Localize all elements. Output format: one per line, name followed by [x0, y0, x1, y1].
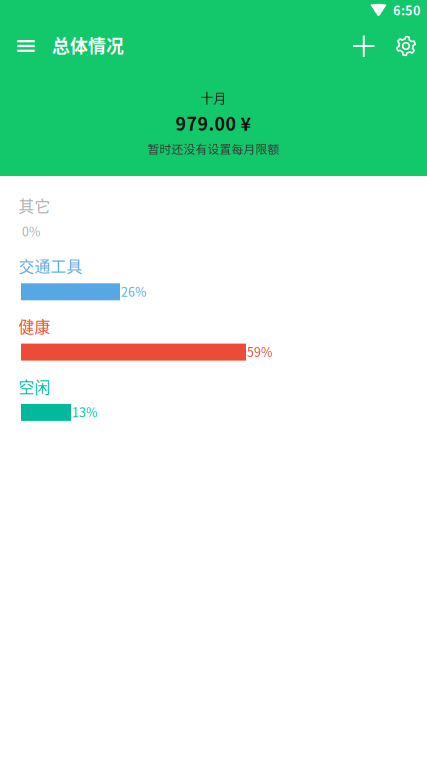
button[interactable]: 空闲: [0, 375, 427, 435]
staticText: 暂时还没有设置每月限额: [147, 140, 279, 157]
button[interactable]: 健康: [0, 315, 427, 375]
button[interactable]: Settings: [385, 22, 427, 70]
staticText: 0%: [22, 222, 40, 240]
staticText: 健康: [18, 315, 50, 337]
button[interactable]: Add transaction: [342, 22, 385, 70]
staticText: 59%: [247, 343, 272, 361]
staticText: 13%: [72, 403, 97, 421]
staticText: 979.00 ¥: [175, 110, 251, 136]
staticText: 总体情况: [52, 32, 124, 58]
staticText: 其它: [18, 194, 50, 217]
button[interactable]: 暂时还没有设置每月限额: [0, 140, 427, 157]
button[interactable]: 交通工具: [0, 254, 427, 315]
staticText: 十月: [200, 88, 226, 106]
staticText: 6:50: [393, 1, 421, 19]
staticText: 交通工具: [18, 254, 82, 277]
button[interactable]: 其它: [0, 194, 427, 254]
staticText: 空闲: [18, 375, 50, 398]
staticText: 26%: [121, 282, 146, 300]
button[interactable]: Menu: [0, 22, 52, 70]
